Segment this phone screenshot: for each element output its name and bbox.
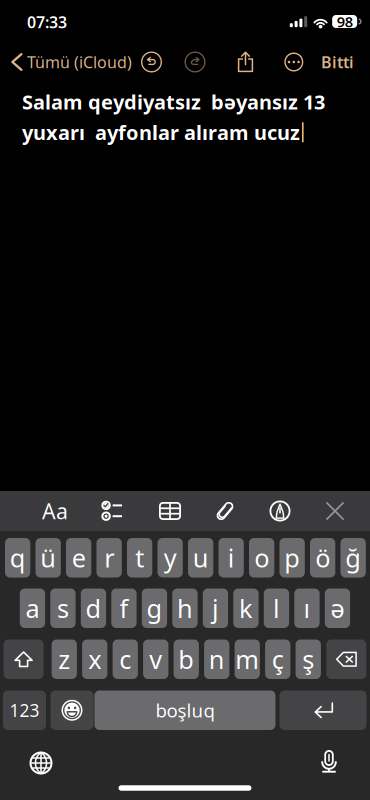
button[interactable]: t bbox=[127, 538, 152, 577]
button[interactable]: ö bbox=[310, 538, 335, 577]
staticText: ü bbox=[40, 541, 56, 574]
button[interactable]: e bbox=[66, 538, 91, 577]
button[interactable]: ç bbox=[265, 639, 290, 679]
staticText: Bitti bbox=[321, 51, 354, 73]
button[interactable]: Dictate bbox=[307, 740, 351, 784]
button[interactable]: Redo bbox=[184, 51, 205, 72]
staticText: p bbox=[284, 541, 300, 574]
button[interactable]: z bbox=[52, 639, 77, 679]
staticText: s bbox=[57, 591, 69, 625]
button[interactable]: Shift bbox=[4, 639, 44, 679]
button[interactable]: a bbox=[20, 588, 45, 628]
button[interactable]: Delete bbox=[326, 639, 366, 679]
staticText: 98 bbox=[337, 12, 353, 31]
button[interactable]: y bbox=[157, 538, 183, 577]
staticText: r bbox=[104, 541, 114, 574]
staticText: t bbox=[135, 541, 144, 574]
staticText: 123 bbox=[9, 699, 39, 722]
staticText: i bbox=[228, 541, 235, 574]
button[interactable]: ş bbox=[296, 639, 321, 679]
staticText: v bbox=[149, 642, 162, 676]
button[interactable]: Markup bbox=[258, 492, 302, 530]
button[interactable]: ı bbox=[294, 588, 320, 628]
button[interactable]: f bbox=[111, 588, 137, 628]
button[interactable]: Hide keyboard bbox=[313, 492, 357, 530]
button[interactable]: m bbox=[235, 639, 260, 679]
button[interactable]: d bbox=[81, 588, 106, 628]
button[interactable]: Checklist bbox=[90, 492, 134, 530]
staticText: yuxarı ayfonlar alıram ucuz bbox=[22, 119, 300, 146]
staticText: ə bbox=[330, 591, 344, 625]
staticText: ö bbox=[315, 541, 330, 574]
button[interactable]: o bbox=[249, 538, 274, 577]
staticText: z bbox=[58, 642, 70, 676]
staticText: l bbox=[273, 591, 280, 625]
button[interactable]: ü bbox=[35, 538, 61, 577]
staticText: q bbox=[10, 541, 26, 574]
staticText: e bbox=[72, 541, 86, 574]
staticText: Tümü (iCloud) bbox=[27, 51, 132, 73]
staticText: 07:33 bbox=[27, 11, 67, 33]
button[interactable]: Tümü (iCloud) bbox=[11, 46, 151, 78]
button[interactable]: Attachment bbox=[203, 492, 247, 530]
button[interactable]: n bbox=[204, 639, 229, 679]
button[interactable]: Return bbox=[279, 690, 366, 730]
button[interactable]: q bbox=[5, 538, 30, 577]
button[interactable]: p bbox=[279, 538, 305, 577]
staticText: a bbox=[25, 591, 39, 625]
button[interactable]: k bbox=[233, 588, 259, 628]
staticText: d bbox=[85, 591, 101, 625]
staticText: x bbox=[88, 642, 101, 676]
staticText: m bbox=[235, 642, 259, 676]
button[interactable]: Next keyboard bbox=[19, 741, 63, 785]
button[interactable]: ə bbox=[325, 588, 350, 628]
button[interactable]: c bbox=[113, 639, 138, 679]
staticText: n bbox=[209, 642, 225, 676]
staticText: h bbox=[177, 591, 193, 625]
staticText: b bbox=[178, 642, 194, 676]
button[interactable]: v bbox=[143, 639, 168, 679]
staticText: y bbox=[164, 541, 177, 574]
button[interactable]: x bbox=[82, 639, 107, 679]
button[interactable]: Numbers bbox=[3, 690, 46, 730]
button[interactable]: s bbox=[50, 588, 76, 628]
staticText: f bbox=[119, 591, 128, 625]
staticText: Salam qeydiyatsız bəyansız 13 bbox=[22, 88, 325, 115]
button[interactable]: j bbox=[203, 588, 228, 628]
staticText: g bbox=[146, 591, 162, 625]
staticText: Aa bbox=[42, 497, 68, 525]
staticText: u bbox=[193, 541, 209, 574]
button[interactable]: Share bbox=[236, 51, 255, 73]
button[interactable]: g bbox=[142, 588, 167, 628]
button[interactable]: Undo bbox=[141, 51, 162, 72]
button[interactable]: Space bbox=[94, 690, 275, 730]
staticText: k bbox=[239, 591, 253, 625]
button[interactable]: u bbox=[188, 538, 213, 577]
button[interactable]: ğ bbox=[340, 538, 366, 577]
button[interactable]: l bbox=[264, 588, 289, 628]
staticText: ş bbox=[302, 642, 314, 676]
button[interactable]: Bitti bbox=[321, 47, 354, 77]
button[interactable]: Table bbox=[148, 492, 192, 530]
staticText: ı bbox=[303, 591, 310, 625]
staticText: o bbox=[254, 541, 269, 574]
staticText: ğ bbox=[345, 541, 361, 574]
button[interactable]: h bbox=[172, 588, 198, 628]
button[interactable]: i bbox=[218, 538, 244, 577]
staticText: boşluq bbox=[155, 698, 214, 723]
staticText: ç bbox=[272, 642, 284, 676]
button[interactable]: r bbox=[96, 538, 122, 577]
button[interactable]: More bbox=[284, 52, 303, 71]
button[interactable]: b bbox=[174, 639, 199, 679]
staticText: c bbox=[119, 642, 131, 676]
staticText: j bbox=[212, 591, 219, 625]
button[interactable]: Emoji bbox=[50, 690, 93, 730]
button[interactable]: Text format bbox=[33, 492, 77, 530]
